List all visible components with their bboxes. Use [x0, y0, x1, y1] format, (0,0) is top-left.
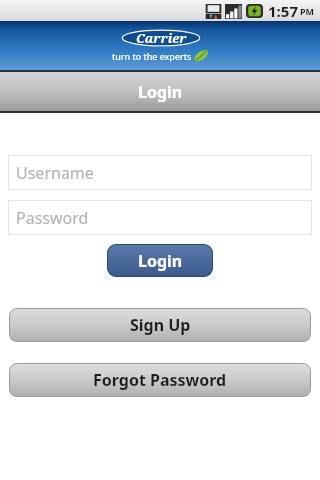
other: Signal strength — [225, 4, 242, 19]
staticText: Login — [138, 81, 183, 103]
button[interactable]: Username — [8, 155, 312, 190]
other: Battery charging — [246, 4, 263, 18]
staticText: Carrier — [136, 29, 187, 47]
staticText: turn to the experts — [112, 50, 192, 62]
button[interactable]: Sign Up — [9, 308, 311, 342]
staticText: Login — [138, 250, 183, 272]
staticText: Username — [16, 162, 94, 184]
staticText: Forgot Password — [93, 369, 227, 391]
staticText: 1:57 — [268, 1, 298, 21]
staticText: Sign Up — [130, 314, 191, 336]
other: 3G mobile data — [205, 4, 222, 19]
button[interactable]: Password — [8, 200, 312, 235]
button[interactable]: Forgot Password — [9, 363, 311, 397]
staticText: Password — [16, 207, 89, 229]
staticText: PM — [300, 5, 315, 17]
button[interactable]: Login — [107, 244, 213, 277]
